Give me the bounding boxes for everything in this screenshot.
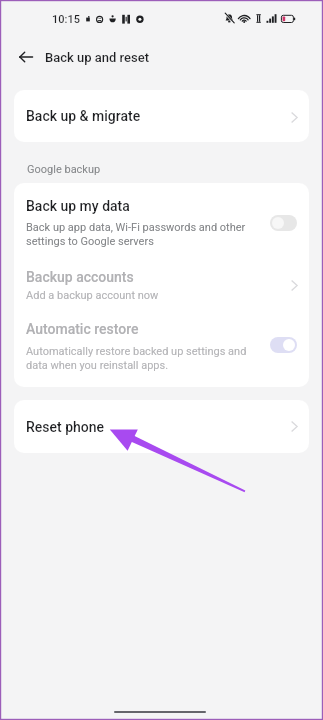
staticText: Automatically restore backed up settings… — [26, 345, 247, 371]
button[interactable] — [14, 183, 309, 253]
staticText: Automatic restore — [26, 321, 139, 337]
button[interactable] — [14, 305, 309, 387]
staticText: 10:15 — [52, 13, 80, 26]
staticText: Add a backup account now — [26, 289, 159, 302]
staticText: Google backup — [27, 163, 101, 176]
staticText: Reset phone — [26, 419, 105, 435]
button[interactable]: Back — [11, 42, 41, 72]
button[interactable]: Switch off — [270, 215, 297, 231]
staticText: Backup accounts — [26, 269, 134, 285]
button[interactable] — [14, 90, 309, 142]
button[interactable] — [14, 400, 309, 453]
staticText: Back up & migrate — [26, 108, 141, 124]
staticText: Back up my data — [26, 198, 130, 214]
staticText: Back up and reset — [45, 50, 149, 65]
button[interactable]: Switch on — [270, 337, 297, 353]
button[interactable] — [14, 253, 309, 305]
staticText: Back up app data, Wi-Fi passwords and ot… — [26, 221, 246, 247]
